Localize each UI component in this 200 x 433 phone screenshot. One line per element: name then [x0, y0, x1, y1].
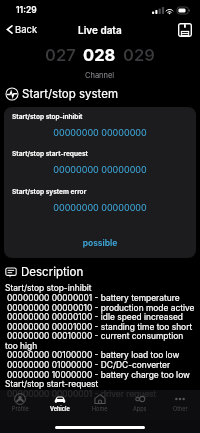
- staticText: 00000000 00010000 - current consumption: [7, 331, 184, 341]
- staticText: 00000000 00000000: [4, 164, 196, 175]
- staticText: Apps: [133, 406, 147, 413]
- button[interactable]: Start/stop stop-inhibit: [4, 107, 196, 144]
- staticText: 11:29: [16, 5, 37, 15]
- staticText: Start/stop system error: [12, 188, 87, 196]
- staticText: 00000000 00001000 - standing time too sh…: [7, 322, 193, 332]
- staticText: Start/stop start-request: [12, 150, 88, 158]
- button[interactable]: 029: [123, 45, 155, 65]
- staticText: Start/stop stop-inhibit: [12, 113, 83, 121]
- button[interactable]: Vehicle: [44, 393, 76, 413]
- staticText: 00000000 00000001 - battery temperature: [7, 293, 180, 303]
- staticText: 028: [83, 45, 116, 65]
- staticText: 00000000 00000001 - driver request: [7, 389, 157, 399]
- staticText: Start/stop stop-inhibit: [5, 283, 92, 293]
- staticText: 00000000 00100000 - battery load too low: [7, 350, 180, 360]
- button[interactable]: Save data: [178, 23, 192, 37]
- staticText: too high: [5, 341, 38, 351]
- staticText: Channel: [85, 71, 115, 80]
- button[interactable]: Home: [84, 393, 116, 413]
- button[interactable]: Start/stop start-request: [4, 144, 196, 181]
- staticText: Other: [173, 406, 188, 413]
- button[interactable]: Back: [4, 23, 39, 36]
- staticText: 00000000 10000000 - battery charge too l…: [7, 370, 190, 380]
- button[interactable]: Profile: [4, 393, 36, 413]
- staticText: 00000000 00000000: [4, 127, 196, 138]
- staticText: 00000000 00000010 - production mode acti…: [7, 303, 195, 313]
- staticText: Home: [92, 406, 108, 413]
- button[interactable]: Start/stop system error: [4, 182, 196, 219]
- button[interactable]: 027: [45, 45, 76, 65]
- button[interactable]: Other: [164, 393, 196, 413]
- staticText: Description: [21, 265, 84, 279]
- staticText: Back: [15, 24, 38, 35]
- staticText: possible: [4, 238, 196, 248]
- staticText: Start/stop start-request: [5, 379, 99, 389]
- staticText: Live data: [78, 24, 122, 36]
- staticText: Vehicle: [50, 406, 70, 413]
- staticText: 00000000 00000000: [4, 202, 196, 213]
- button[interactable]: Apps: [124, 393, 156, 413]
- staticText: 00000000 00000100 - idle speed increased: [7, 312, 183, 322]
- staticText: 00000000 01000000 - DC/DC-converter: [7, 360, 171, 370]
- staticText: Profile: [12, 406, 29, 413]
- staticText: Start/stop system: [22, 87, 118, 101]
